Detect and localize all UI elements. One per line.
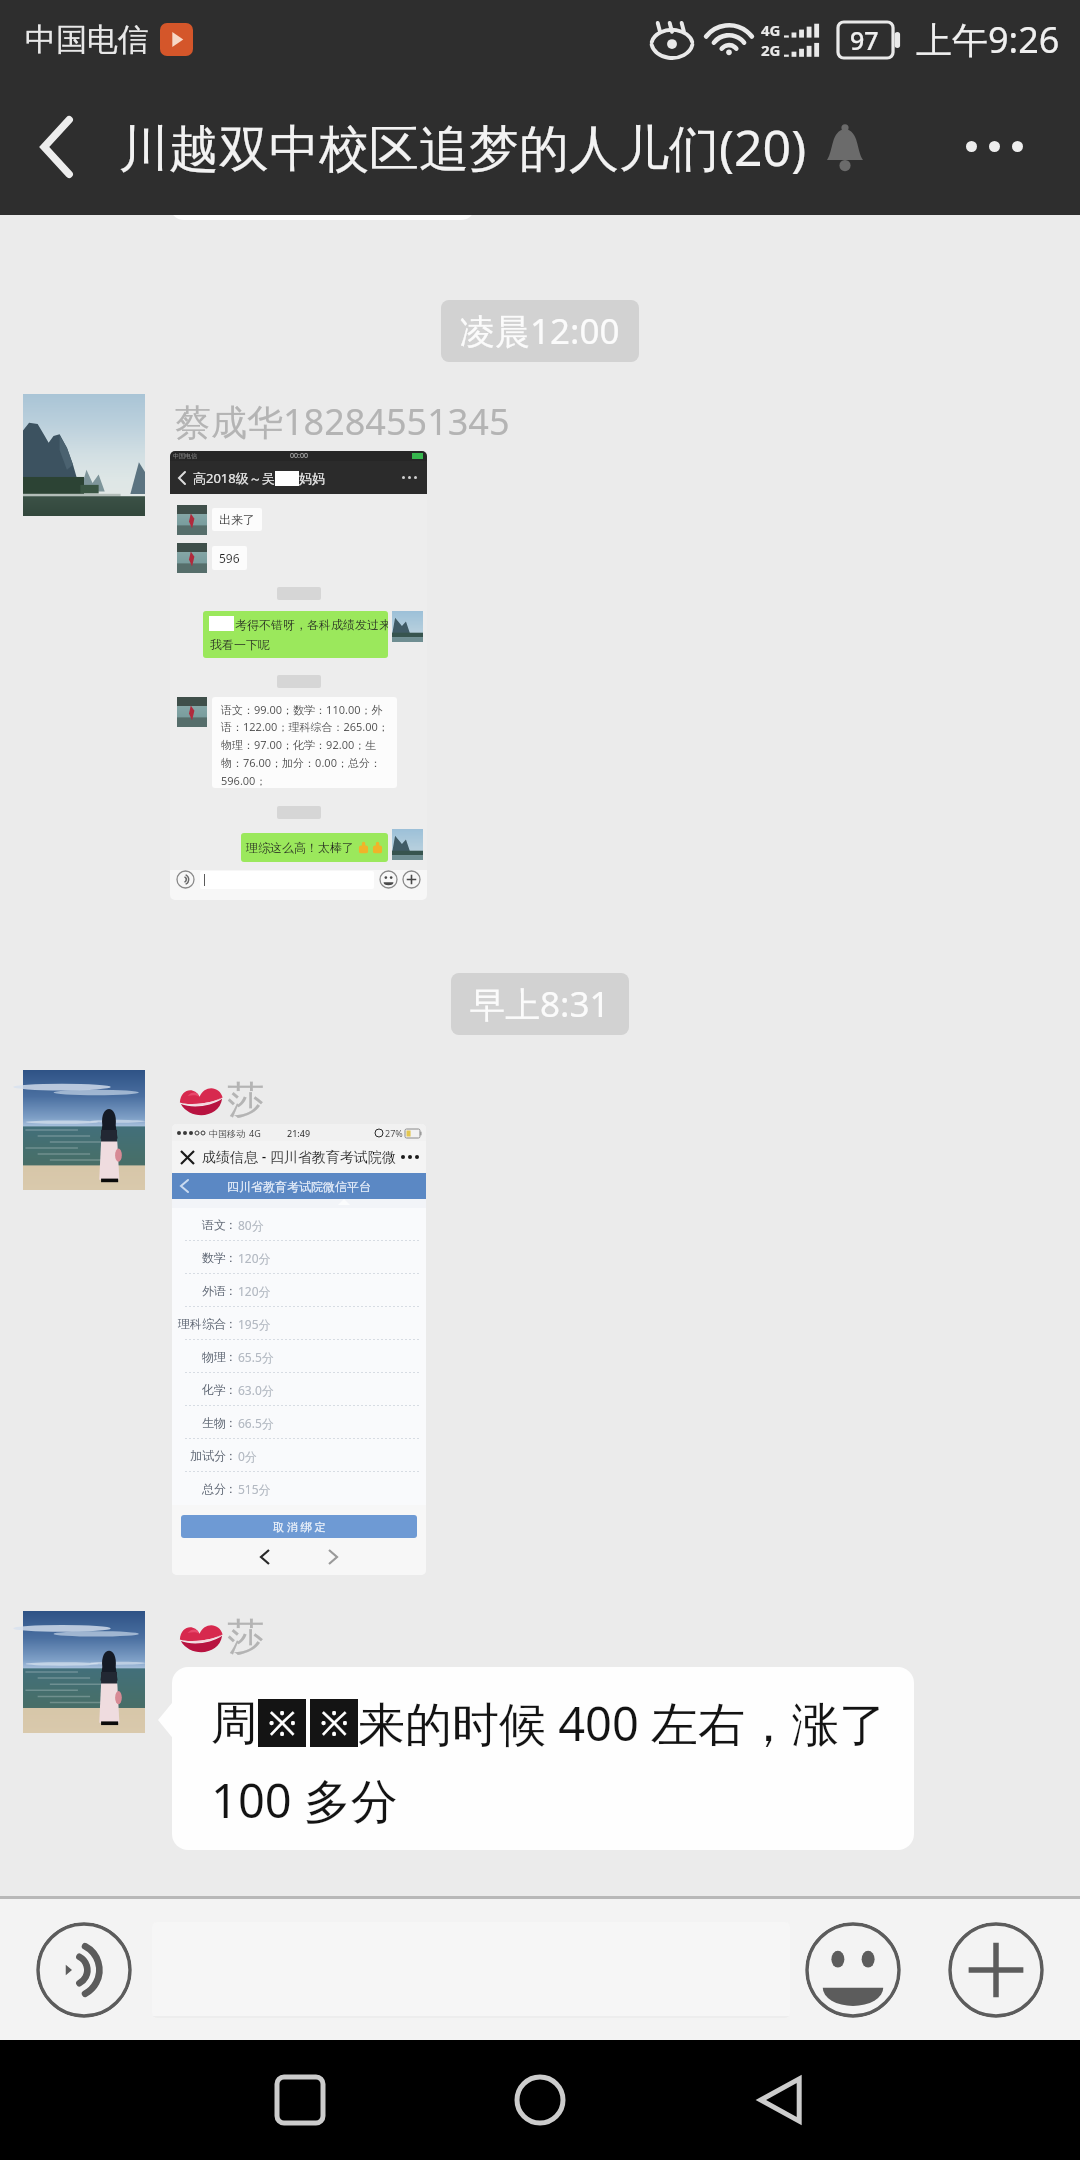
staticText: 蔡成华18284551345 bbox=[175, 397, 510, 446]
staticText: 515分 bbox=[238, 1481, 271, 1497]
staticText: 中国电信 bbox=[25, 20, 149, 59]
staticText: ※ bbox=[268, 1700, 297, 1746]
button[interactable]: Recents bbox=[245, 2045, 355, 2155]
staticText: 成绩信息 - 四川省教育考试院微信 bbox=[202, 1147, 396, 1167]
staticText: 596 bbox=[219, 550, 240, 566]
staticText: 我看一下呢 bbox=[210, 637, 270, 652]
staticText: 4G bbox=[761, 20, 781, 40]
staticText: 莎 bbox=[227, 1613, 264, 1660]
button[interactable]: 取 消 绑 定 bbox=[181, 1515, 417, 1538]
staticText: ： bbox=[225, 1250, 237, 1265]
staticText: 0分 bbox=[238, 1448, 257, 1464]
staticText: 凌晨12:00 bbox=[460, 307, 620, 355]
button[interactable]: Back bbox=[725, 2045, 835, 2155]
staticText: 生物 bbox=[202, 1415, 226, 1430]
staticText: 中国移动 bbox=[209, 1128, 245, 1139]
staticText: 195分 bbox=[238, 1316, 271, 1332]
staticText: ： bbox=[225, 1217, 237, 1232]
staticText: 考得不错呀，各科成绩发过来 bbox=[235, 617, 388, 632]
staticText: 总分 bbox=[202, 1481, 226, 1496]
staticText: ： bbox=[225, 1382, 237, 1397]
staticText: 120分 bbox=[238, 1283, 271, 1299]
staticText: 27% bbox=[385, 1127, 403, 1139]
button[interactable]: Score screenshot bbox=[172, 1124, 426, 1575]
staticText: ： bbox=[225, 1481, 237, 1496]
staticText: 理科综合 bbox=[178, 1316, 226, 1331]
staticText: 妈妈 bbox=[299, 470, 325, 486]
button[interactable]: More options bbox=[930, 78, 1058, 215]
staticText: 四川省教育考试院微信平台 bbox=[227, 1179, 371, 1194]
staticText: 高2018级～吴 bbox=[193, 469, 275, 487]
staticText: 上午9:26 bbox=[916, 15, 1060, 64]
staticText: 4G bbox=[249, 1127, 261, 1139]
staticText: 00:00 bbox=[290, 451, 308, 461]
staticText: 66.5分 bbox=[238, 1415, 274, 1431]
staticText: 数学 bbox=[202, 1250, 226, 1265]
staticText: 莎 bbox=[227, 1076, 264, 1123]
staticText: 2G bbox=[761, 40, 781, 60]
button[interactable]: Voice input bbox=[36, 1922, 132, 2018]
button[interactable]: Back bbox=[0, 78, 114, 215]
staticText: 97 bbox=[850, 23, 879, 57]
staticText: 取 消 绑 定 bbox=[273, 1519, 326, 1534]
button[interactable]: Emoji bbox=[805, 1922, 901, 2018]
staticText: 80分 bbox=[238, 1217, 264, 1233]
staticText: 63.0分 bbox=[238, 1382, 274, 1398]
staticText: 21:49 bbox=[287, 1127, 311, 1139]
staticText: ： bbox=[225, 1448, 237, 1463]
staticText: 100 多分 bbox=[211, 1768, 398, 1832]
staticText: 周 bbox=[211, 1694, 258, 1753]
button[interactable]: Contact avatar bbox=[23, 1611, 145, 1733]
staticText: ： bbox=[225, 1283, 237, 1298]
button[interactable]: Chat screenshot bbox=[170, 451, 427, 900]
staticText: 物理 bbox=[202, 1349, 226, 1364]
button[interactable]: More functions bbox=[948, 1922, 1044, 2018]
staticText: ： bbox=[225, 1349, 237, 1364]
button[interactable]: Contact avatar bbox=[23, 1070, 145, 1190]
staticText: ： bbox=[225, 1415, 237, 1430]
staticText: ： bbox=[225, 1316, 237, 1331]
staticText: 来的时候 400 左右，涨了 bbox=[358, 1691, 887, 1755]
staticText: 中国电信 bbox=[173, 452, 197, 460]
staticText: 出来了 bbox=[219, 512, 255, 527]
button[interactable]: 周 bbox=[172, 1667, 914, 1850]
staticText: 语文 bbox=[202, 1217, 226, 1232]
button[interactable]: Home bbox=[485, 2045, 595, 2155]
staticText: 加试分 bbox=[190, 1448, 226, 1463]
staticText: 65.5分 bbox=[238, 1349, 274, 1365]
staticText: 化学 bbox=[202, 1382, 226, 1397]
staticText: 早上8:31 bbox=[470, 980, 610, 1028]
button[interactable]: Contact avatar bbox=[23, 394, 145, 516]
staticText: 120分 bbox=[238, 1250, 271, 1266]
staticText: ※ bbox=[320, 1700, 349, 1746]
staticText: 理综这么高！太棒了 bbox=[246, 840, 354, 855]
staticText: 川越双中校区追梦的人儿们(20) bbox=[119, 113, 807, 181]
staticText: 语文：99.00；数学：110.00；外 语：122.00；理科综合：265.0… bbox=[221, 702, 389, 788]
staticText: 外语 bbox=[202, 1283, 226, 1298]
